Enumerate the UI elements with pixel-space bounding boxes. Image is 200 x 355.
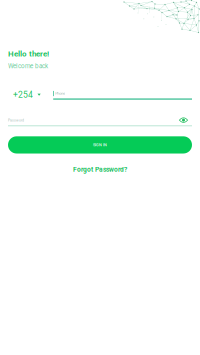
button[interactable]: Forgot Password? <box>8 165 192 173</box>
staticText: Welcome back <box>8 62 48 70</box>
staticText: Password <box>8 118 24 122</box>
button[interactable]: SIGN IN <box>8 136 192 153</box>
staticText: Forgot Password? <box>73 165 127 173</box>
staticText: Phone <box>55 91 65 96</box>
staticText: SIGN IN <box>93 143 107 147</box>
staticText: Hello there! <box>8 49 49 58</box>
staticText: +254 <box>13 90 33 100</box>
button[interactable]: +254 <box>8 90 46 100</box>
button[interactable]: Show password <box>179 117 192 124</box>
